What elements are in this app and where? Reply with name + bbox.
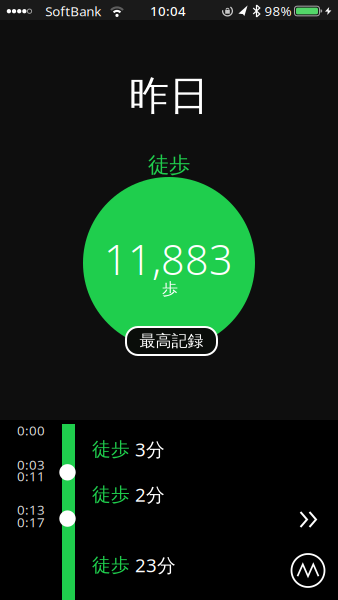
- staticText: 0:11: [17, 467, 45, 485]
- staticText: SoftBank: [45, 2, 101, 20]
- staticText: 98%: [264, 2, 291, 20]
- staticText: 徒歩: [92, 553, 130, 576]
- staticText: 23分: [135, 553, 176, 577]
- staticText: 2分: [135, 482, 165, 507]
- staticText: 0:13: [17, 501, 45, 518]
- staticText: 10:04: [150, 2, 186, 20]
- staticText: 徒歩: [92, 438, 130, 461]
- staticText: 3分: [135, 437, 165, 462]
- staticText: 0:17: [17, 513, 45, 531]
- button[interactable]: Moves menu: [291, 554, 324, 587]
- staticText: 昨日: [129, 71, 209, 120]
- staticText: 0:00: [17, 421, 45, 439]
- staticText: 11,883: [104, 232, 233, 286]
- button[interactable]: 最高記録: [126, 327, 217, 355]
- staticText: 徒歩: [148, 152, 190, 178]
- staticText: 歩: [162, 279, 178, 299]
- staticText: 最高記録: [139, 331, 203, 351]
- button[interactable]: Show details: [298, 510, 318, 529]
- staticText: 0:03: [17, 456, 45, 473]
- staticText: 徒歩: [92, 483, 130, 506]
